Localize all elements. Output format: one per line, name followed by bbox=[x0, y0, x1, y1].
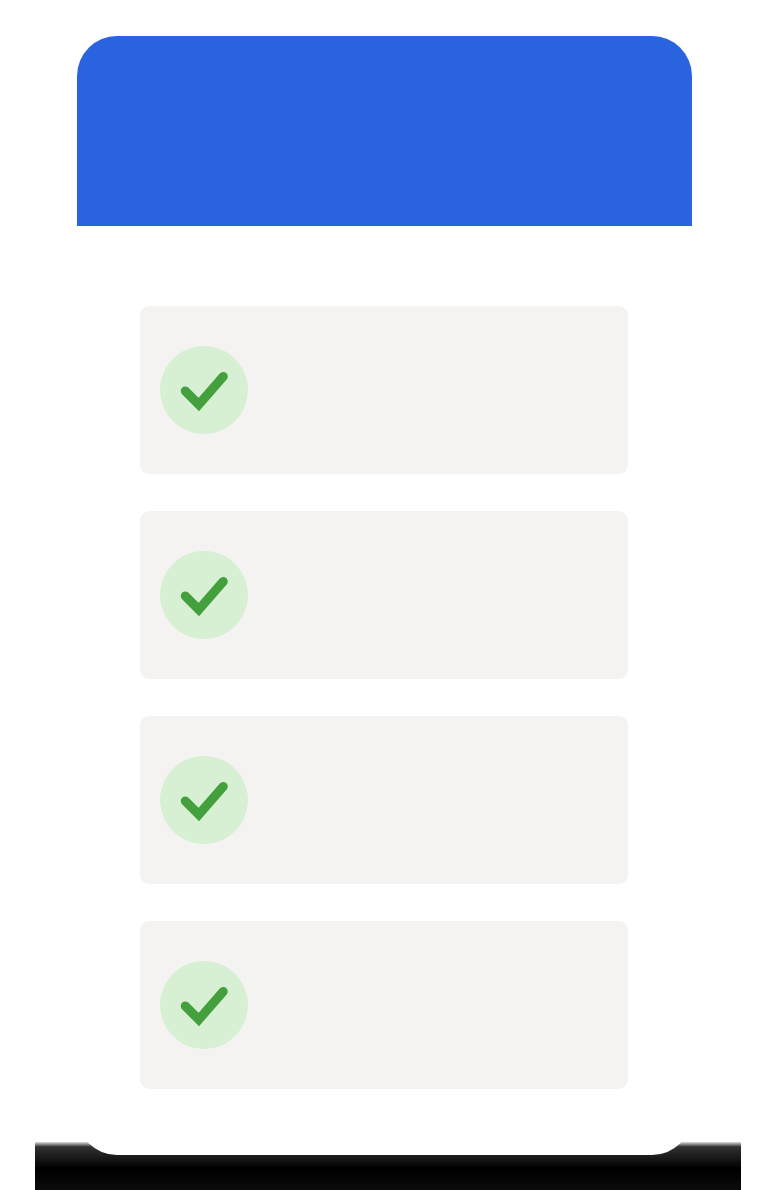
other: Completed bbox=[160, 551, 248, 639]
button[interactable] bbox=[77, 36, 692, 226]
button[interactable]: Completed bbox=[140, 306, 628, 474]
other: Completed bbox=[160, 961, 248, 1049]
button[interactable]: Completed bbox=[140, 511, 628, 679]
other: Completed bbox=[160, 346, 248, 434]
button[interactable]: Completed bbox=[140, 716, 628, 884]
other: Completed bbox=[160, 756, 248, 844]
button[interactable]: Completed bbox=[140, 921, 628, 1089]
